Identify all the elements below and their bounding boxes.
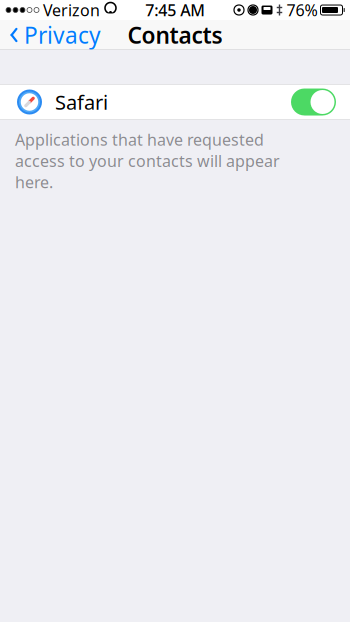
staticText: 7:45 AM	[145, 0, 205, 21]
staticText: Safari	[55, 89, 108, 115]
button[interactable]: Safari	[0, 84, 350, 120]
button[interactable]: Privacy	[0, 20, 109, 50]
staticText: Verizon	[43, 0, 100, 21]
button[interactable]: Safari contacts access, on	[291, 88, 336, 115]
staticText: Contacts	[127, 20, 222, 50]
staticText: Applications that have requested access …	[15, 129, 280, 193]
staticText: Privacy	[24, 20, 101, 50]
staticText: 76%	[286, 0, 317, 21]
